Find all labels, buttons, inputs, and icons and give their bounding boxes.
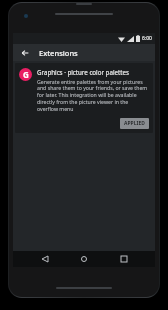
button[interactable]: Home bbox=[76, 251, 92, 267]
button[interactable]: Recent apps bbox=[116, 251, 132, 267]
button[interactable]: Back bbox=[37, 251, 53, 267]
staticText: Generate entire palettes from your pictu… bbox=[37, 78, 149, 113]
staticText: Graphics · picture color palettes bbox=[37, 68, 129, 76]
staticText: G bbox=[23, 69, 29, 80]
staticText: Extensions bbox=[39, 48, 78, 58]
button[interactable]: Back bbox=[18, 46, 32, 60]
button[interactable]: APPLIED bbox=[120, 118, 149, 129]
button[interactable]: G bbox=[15, 63, 153, 133]
staticText: APPLIED bbox=[124, 120, 145, 127]
staticText: 6:00 bbox=[142, 35, 152, 42]
